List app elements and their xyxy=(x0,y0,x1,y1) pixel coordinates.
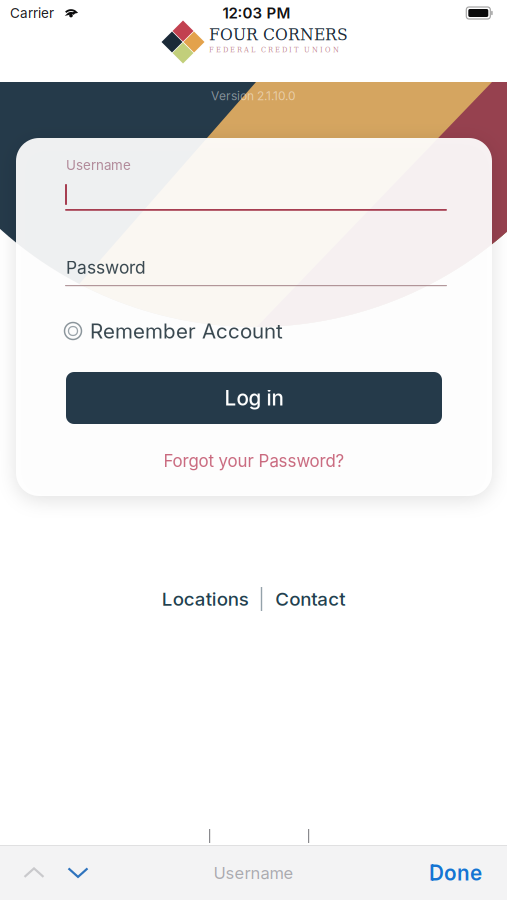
staticText: Carrier xyxy=(10,5,54,21)
button[interactable]: Done xyxy=(412,846,499,900)
staticText: Username xyxy=(66,157,131,173)
staticText: Version 2.1.10.0 xyxy=(211,89,296,103)
button[interactable]: Locations xyxy=(162,584,261,614)
staticText: Log in xyxy=(224,385,283,410)
staticText: Contact xyxy=(275,588,345,610)
staticText: Username xyxy=(213,863,293,883)
button[interactable]: Remember Account xyxy=(64,319,283,343)
button[interactable]: Forgot your Password? xyxy=(66,448,442,474)
staticText: Remember Account xyxy=(90,319,283,343)
staticText: FOUR CORNERS xyxy=(209,24,348,44)
button[interactable]: Contact xyxy=(262,584,345,614)
button[interactable]: Log in xyxy=(66,372,442,424)
staticText: Forgot your Password? xyxy=(163,451,344,471)
staticText: Done xyxy=(429,860,482,885)
button[interactable]: Next field xyxy=(56,846,100,900)
staticText: Locations xyxy=(162,588,249,610)
staticText: F E D E R A L C R E D I T U N I O N xyxy=(209,45,339,54)
staticText: Password xyxy=(66,257,146,278)
staticText: 12:03 PM xyxy=(222,4,290,22)
button[interactable]: Previous field xyxy=(12,846,56,900)
